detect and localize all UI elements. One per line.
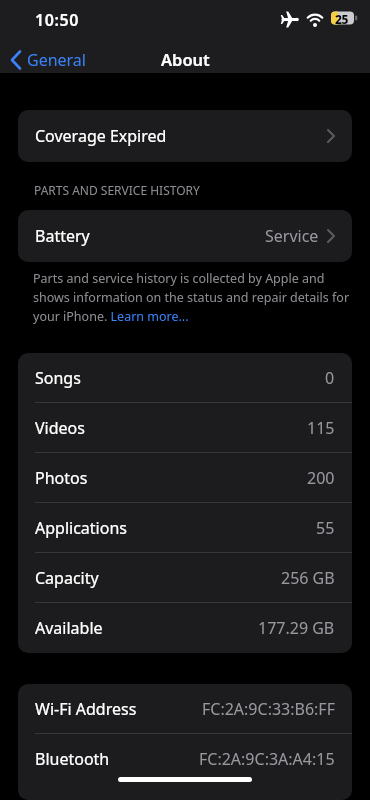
- staticText: FC:2A:9C:3A:A4:15: [199, 748, 335, 770]
- staticText: 10:50: [35, 9, 80, 31]
- staticText: Photos: [35, 467, 88, 489]
- staticText: 55: [316, 517, 335, 539]
- staticText: FC:2A:9C:33:B6:FF: [202, 698, 335, 720]
- button[interactable]: Coverage Expired: [18, 110, 352, 162]
- button[interactable]: Capacity: [18, 553, 352, 603]
- staticText: 200: [307, 467, 335, 489]
- staticText: 25: [335, 11, 348, 27]
- staticText: Coverage Expired: [35, 125, 167, 147]
- button[interactable]: Battery: [18, 210, 352, 262]
- staticText: Parts and service history is collected b…: [33, 270, 350, 325]
- staticText: Available: [35, 617, 103, 639]
- staticText: Bluetooth: [35, 748, 110, 770]
- staticText: PARTS AND SERVICE HISTORY: [34, 182, 200, 198]
- button[interactable]: Videos: [18, 403, 352, 453]
- staticText: Videos: [35, 417, 85, 439]
- button[interactable]: Applications: [18, 503, 352, 553]
- button[interactable]: Bluetooth: [18, 734, 352, 784]
- staticText: 177.29 GB: [258, 617, 335, 639]
- staticText: Capacity: [35, 567, 99, 589]
- staticText: Service: [265, 225, 319, 247]
- button[interactable]: General: [10, 49, 86, 71]
- staticText: Songs: [35, 367, 81, 389]
- staticText: General: [27, 49, 86, 71]
- staticText: Wi-Fi Address: [35, 698, 137, 720]
- button[interactable]: Photos: [18, 453, 352, 503]
- button[interactable]: Available: [18, 603, 352, 653]
- staticText: Battery: [35, 225, 90, 247]
- staticText: 0: [325, 367, 335, 389]
- staticText: 115: [307, 417, 335, 439]
- button[interactable]: Wi-Fi Address: [18, 684, 352, 734]
- staticText: Applications: [35, 517, 127, 539]
- staticText: 256 GB: [281, 567, 335, 589]
- button[interactable]: Songs: [18, 353, 352, 403]
- staticText: About: [161, 48, 210, 70]
